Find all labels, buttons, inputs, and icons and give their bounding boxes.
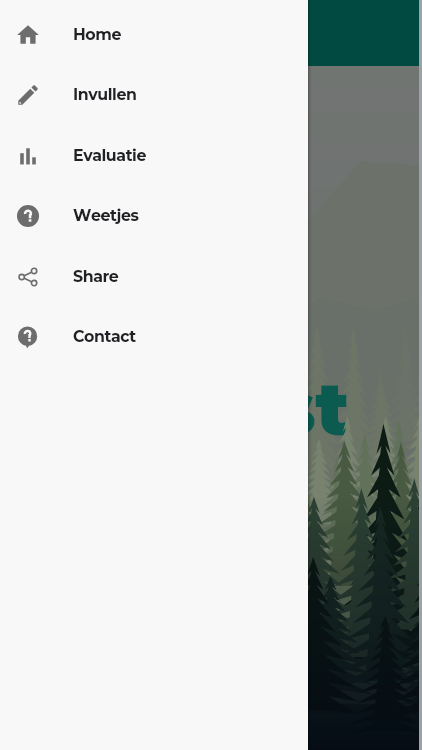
button[interactable]: Invullen	[0, 65, 308, 125]
staticText: Forest	[94, 363, 350, 453]
staticText: Share	[73, 267, 119, 286]
staticText: Weetjes	[73, 206, 139, 225]
button[interactable]: Evaluatie	[0, 126, 308, 186]
staticText: Contact	[73, 327, 136, 346]
button[interactable]: Weetjes	[0, 186, 308, 246]
staticText: Home	[73, 25, 121, 44]
staticText: Evaluatie	[73, 146, 146, 165]
button[interactable]: Home	[0, 5, 308, 65]
button[interactable]: Contact	[0, 307, 308, 367]
button[interactable]: Share	[0, 247, 308, 307]
staticText: Invullen	[73, 85, 137, 104]
